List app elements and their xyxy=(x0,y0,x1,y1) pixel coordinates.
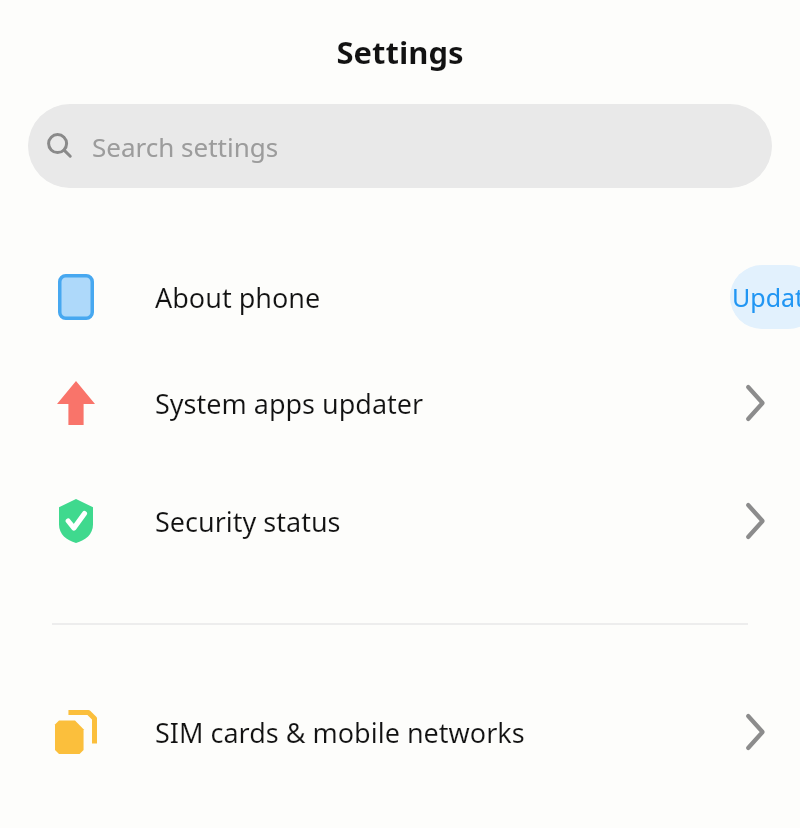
staticText: Settings xyxy=(336,31,464,73)
button[interactable]: About phone xyxy=(0,250,800,344)
staticText: Update xyxy=(732,280,800,314)
button[interactable]: System apps updater xyxy=(0,344,800,462)
staticText: System apps updater xyxy=(155,385,710,422)
staticText: Search settings xyxy=(92,129,279,164)
other: Open xyxy=(746,387,764,419)
other: Open xyxy=(746,716,764,748)
button[interactable]: Update xyxy=(730,265,800,329)
staticText: SIM cards & mobile networks xyxy=(155,714,710,751)
button[interactable]: Search settings xyxy=(28,104,772,188)
staticText: Security status xyxy=(155,503,710,540)
other: Open xyxy=(746,505,764,537)
staticText: About phone xyxy=(155,279,710,316)
button[interactable]: SIM cards & mobile networks xyxy=(0,685,800,779)
button[interactable]: Security status xyxy=(0,462,800,580)
